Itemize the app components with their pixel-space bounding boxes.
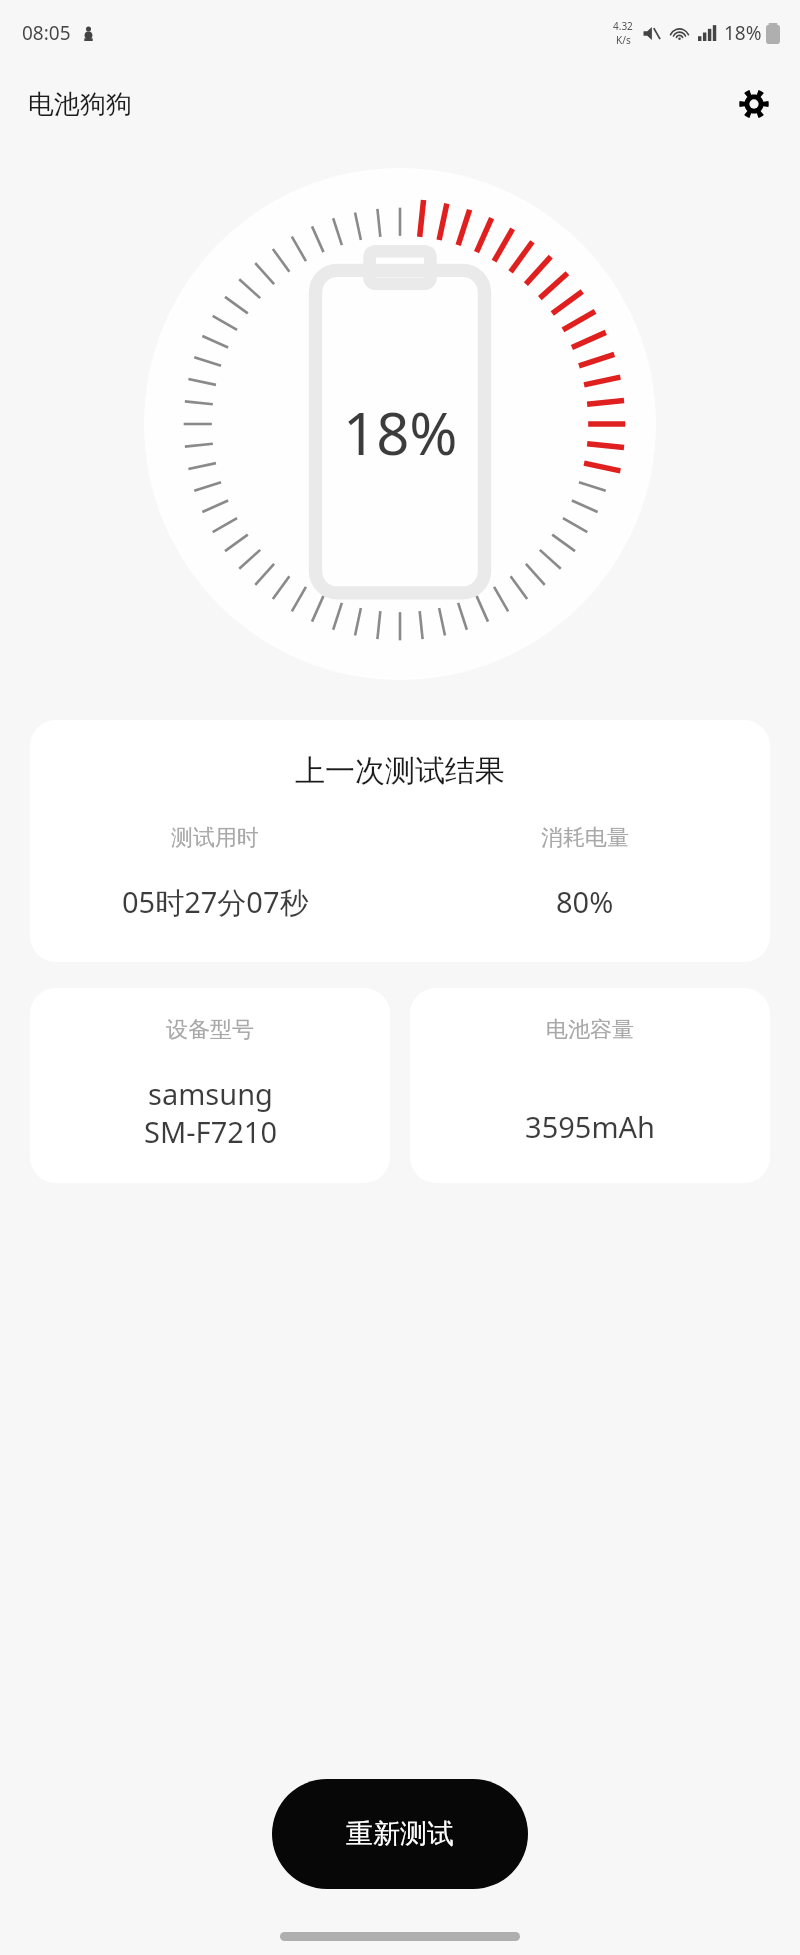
- button[interactable]: 重新测试: [272, 1779, 528, 1889]
- button[interactable]: 设备型号: [30, 988, 390, 1183]
- staticText: 重新测试: [346, 1817, 454, 1851]
- button[interactable]: Settings: [726, 76, 782, 132]
- staticText: 消耗电量: [541, 824, 629, 852]
- staticText: 测试用时: [171, 824, 259, 852]
- staticText: samsung SM-F7210: [144, 1074, 277, 1151]
- staticText: 05时27分07秒: [122, 882, 309, 922]
- staticText: K/s: [616, 33, 631, 47]
- button[interactable]: 电池容量: [410, 988, 770, 1183]
- staticText: 电池狗狗: [28, 88, 132, 121]
- staticText: 上一次测试结果: [30, 752, 770, 790]
- staticText: 4.32: [613, 19, 633, 33]
- staticText: 电池容量: [546, 1016, 634, 1044]
- button[interactable]: 上一次测试结果: [30, 720, 770, 962]
- staticText: 18%: [343, 393, 458, 472]
- staticText: 设备型号: [166, 1016, 254, 1044]
- staticText: 08:05: [22, 20, 71, 46]
- staticText: 18%: [724, 20, 762, 46]
- staticText: 80%: [556, 882, 614, 921]
- staticText: 3595mAh: [525, 1107, 655, 1146]
